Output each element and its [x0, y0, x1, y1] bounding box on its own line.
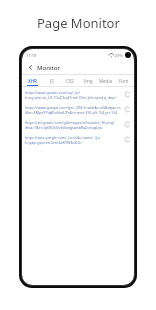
button[interactable]: https://www.google.com/gen_204?s=web&t=a… [22, 102, 134, 117]
button[interactable]: Img [79, 75, 97, 86]
staticText: 29% [115, 53, 123, 58]
button[interactable]: Reload [123, 120, 132, 129]
button[interactable]: Reload [123, 135, 132, 144]
staticText: https://www.gstatic.com/og/_/js/k=og.qtm… [25, 90, 121, 100]
staticText: Monitor [37, 64, 61, 72]
staticText: XHR [28, 78, 37, 84]
button[interactable]: https://apis.google.com/_/scs/abc-static… [22, 132, 134, 147]
button[interactable]: XHR [23, 75, 42, 86]
button[interactable]: Back [26, 63, 35, 72]
button[interactable]: Media [97, 75, 115, 86]
button[interactable]: https://ssl.gstatic.com/gb/images/silhou… [22, 117, 134, 132]
staticText: Page Monitor [37, 14, 120, 32]
staticText: Img [84, 78, 93, 84]
button[interactable]: Reload [123, 105, 132, 114]
staticText: Font [119, 78, 129, 84]
staticText: JS [50, 78, 54, 84]
staticText: https://www.google.com/gen_204?s=web&t=a… [25, 105, 121, 115]
staticText: Media [99, 78, 113, 84]
button[interactable]: https://www.gstatic.com/og/_/js/k=og.qtm… [22, 87, 134, 102]
staticText: https://ssl.gstatic.com/gb/images/silhou… [25, 120, 121, 130]
staticText: 17:19 [26, 53, 37, 58]
button[interactable]: Font [115, 75, 133, 86]
staticText: https://apis.google.com/_/scs/abc-static… [25, 135, 121, 145]
button[interactable]: Reload [123, 90, 132, 99]
button[interactable]: CSS [61, 75, 79, 86]
button[interactable]: JS [42, 75, 61, 86]
staticText: CSS [66, 78, 74, 84]
